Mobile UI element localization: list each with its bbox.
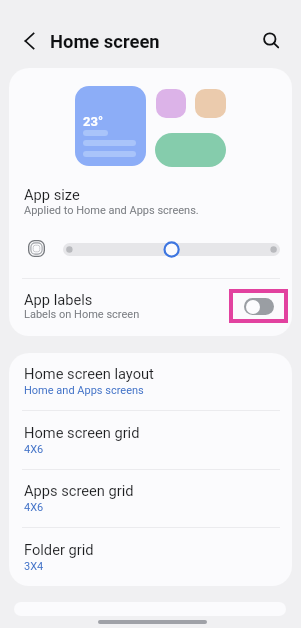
staticText: App size <box>24 186 80 203</box>
staticText: 4X6 <box>24 501 44 514</box>
staticText: App labels <box>24 291 93 308</box>
staticText: 23° <box>83 114 103 129</box>
staticText: Labels on Home screen <box>24 308 140 321</box>
staticText: Home screen grid <box>24 424 140 441</box>
staticText: 3X4 <box>24 560 44 573</box>
staticText: Applied to Home and Apps screens. <box>24 204 199 217</box>
staticText: Apps screen grid <box>24 482 134 499</box>
staticText: Home and Apps screens <box>24 384 144 397</box>
button[interactable]: Search <box>250 20 292 62</box>
button[interactable]: Home screen grid <box>9 412 292 470</box>
staticText: 4X6 <box>24 443 44 456</box>
staticText: Folder grid <box>24 541 94 558</box>
button[interactable]: Folder grid <box>9 529 292 585</box>
staticText: Home screen <box>50 31 160 53</box>
button[interactable]: App labels toggle <box>233 293 284 319</box>
button[interactable]: Navigate up <box>8 20 50 62</box>
button[interactable]: Home screen layout <box>9 353 292 411</box>
button[interactable]: Apps screen grid <box>9 470 292 528</box>
staticText: Home screen layout <box>24 365 154 382</box>
